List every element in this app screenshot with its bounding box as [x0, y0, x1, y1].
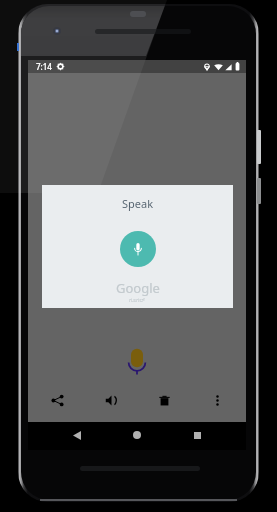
- button[interactable]: Start speaking: [120, 231, 156, 267]
- button[interactable]: More options: [204, 387, 230, 413]
- staticText: 7:14: [36, 61, 52, 72]
- staticText: ಗೂಗಲ್: [129, 297, 146, 303]
- button[interactable]: Share: [44, 387, 70, 413]
- staticText: Google: [116, 279, 160, 297]
- button[interactable]: Microphone: [123, 346, 151, 376]
- button[interactable]: Back: [66, 424, 88, 446]
- button[interactable]: Home: [126, 424, 148, 446]
- button[interactable]: Recents: [186, 424, 208, 446]
- button[interactable]: Delete: [151, 387, 177, 413]
- staticText: Speak: [122, 196, 154, 211]
- button[interactable]: Volume: [98, 387, 124, 413]
